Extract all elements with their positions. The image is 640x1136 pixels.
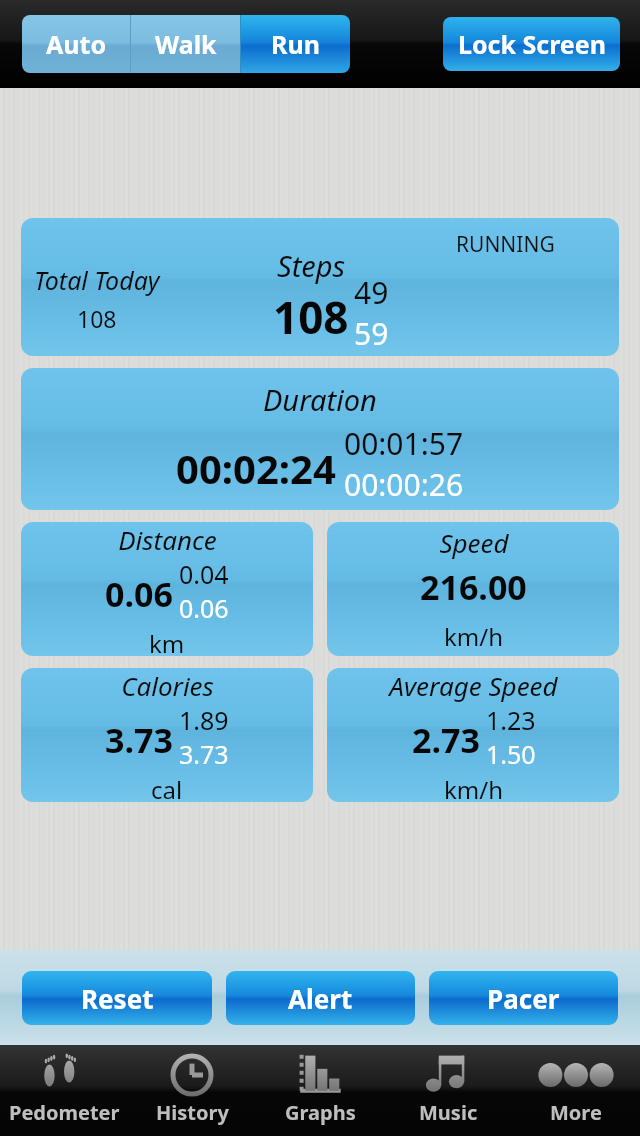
staticText: Pedometer <box>9 1099 120 1126</box>
button[interactable]: Distance <box>21 522 313 656</box>
button[interactable]: Music <box>384 1045 512 1136</box>
staticText: 0.04 <box>179 557 229 591</box>
staticText: Reset <box>81 981 154 1016</box>
button[interactable]: Pedometer <box>0 1045 128 1136</box>
button[interactable]: History <box>128 1045 256 1136</box>
staticText: km/h <box>444 773 504 802</box>
other: Music <box>425 1053 471 1097</box>
button[interactable]: Pacer <box>429 971 618 1025</box>
button[interactable]: Alert <box>226 971 415 1025</box>
staticText: History <box>156 1099 229 1126</box>
staticText: Speed <box>439 525 509 560</box>
button[interactable]: Graphs <box>256 1045 384 1136</box>
staticText: Run <box>271 27 320 61</box>
button[interactable]: Auto <box>22 15 130 73</box>
staticText: km/h <box>444 620 504 653</box>
button[interactable]: Duration <box>21 368 619 510</box>
staticText: 59 <box>354 313 389 354</box>
staticText: Total Today <box>34 263 160 297</box>
staticText: Music <box>419 1099 478 1126</box>
staticText: Calories <box>121 668 214 703</box>
button[interactable]: Speed <box>327 522 619 656</box>
button[interactable]: Run <box>241 15 350 73</box>
staticText: 00:00:26 <box>344 464 464 505</box>
staticText: 2.73 <box>412 717 480 763</box>
staticText: 49 <box>354 272 389 313</box>
staticText: Duration <box>263 380 377 419</box>
staticText: Steps <box>277 246 346 285</box>
button[interactable]: Average Speed <box>327 668 619 802</box>
button[interactable]: Walk <box>131 15 240 73</box>
staticText: RUNNING <box>456 230 555 259</box>
button[interactable]: More <box>512 1045 640 1136</box>
staticText: Walk <box>155 27 217 61</box>
staticText: 0.06 <box>179 591 229 625</box>
staticText: Graphs <box>285 1099 356 1126</box>
staticText: Pacer <box>487 981 560 1016</box>
staticText: 00:01:57 <box>344 423 464 464</box>
staticText: 108 <box>273 287 349 347</box>
staticText: Lock Screen <box>458 27 606 61</box>
staticText: 1.89 <box>179 703 229 737</box>
other: Graphs <box>297 1053 343 1097</box>
staticText: km <box>149 627 185 656</box>
staticText: 3.73 <box>179 737 229 771</box>
staticText: Auto <box>46 27 107 61</box>
staticText: 1.50 <box>486 737 536 771</box>
staticText: Alert <box>288 981 353 1016</box>
staticText: 216.00 <box>420 564 527 610</box>
staticText: 1.23 <box>486 703 536 737</box>
button[interactable]: Lock Screen <box>443 17 620 71</box>
staticText: Average Speed <box>389 668 558 703</box>
staticText: 0.06 <box>105 571 173 617</box>
other: Pedometer <box>38 1053 90 1097</box>
staticText: More <box>550 1099 602 1126</box>
staticText: 3.73 <box>105 717 173 763</box>
staticText: 108 <box>77 303 117 334</box>
staticText: 00:02:24 <box>176 441 336 495</box>
button[interactable]: Reset <box>22 971 212 1025</box>
staticText: Distance <box>118 522 217 557</box>
button[interactable]: Calories <box>21 668 313 802</box>
other: History <box>170 1053 214 1097</box>
other: More <box>536 1063 616 1087</box>
button[interactable]: RUNNING <box>21 218 619 356</box>
staticText: cal <box>151 773 183 802</box>
